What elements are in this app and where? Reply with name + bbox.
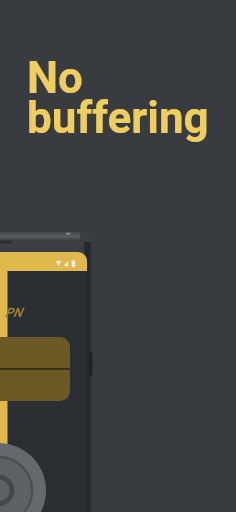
staticText: No buffering: [27, 52, 209, 143]
staticText: PN: [5, 305, 23, 320]
